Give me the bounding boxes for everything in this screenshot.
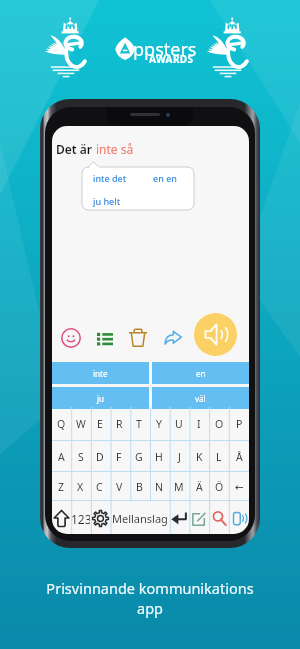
button[interactable]: T bbox=[129, 407, 149, 441]
button[interactable]: N bbox=[149, 472, 169, 501]
staticText: ju helt bbox=[93, 195, 121, 207]
staticText: R bbox=[116, 417, 123, 431]
button[interactable]: ← bbox=[229, 472, 249, 501]
staticText: B bbox=[136, 480, 143, 494]
staticText: C bbox=[96, 480, 103, 494]
button[interactable]: P bbox=[229, 407, 249, 441]
button[interactable]: C bbox=[90, 472, 109, 501]
staticText: inte det bbox=[93, 172, 127, 184]
button[interactable]: Search bbox=[209, 501, 229, 534]
staticText: ju bbox=[97, 393, 105, 404]
staticText: H bbox=[155, 450, 163, 464]
button[interactable]: Q bbox=[52, 407, 71, 441]
button[interactable]: L bbox=[209, 441, 229, 472]
button[interactable]: V bbox=[109, 472, 129, 501]
button[interactable]: O bbox=[209, 407, 229, 441]
button[interactable]: I bbox=[189, 407, 209, 441]
staticText: Z bbox=[58, 480, 65, 494]
staticText: AWARDS bbox=[149, 52, 194, 66]
button[interactable]: Enter bbox=[169, 501, 189, 534]
staticText: Å bbox=[236, 450, 243, 464]
button[interactable]: U bbox=[169, 407, 189, 441]
button[interactable]: Settings bbox=[90, 501, 110, 534]
staticText: W bbox=[76, 417, 86, 431]
button[interactable]: X bbox=[71, 472, 90, 501]
staticText: Ö bbox=[215, 480, 224, 494]
staticText: Mellanslag bbox=[112, 511, 168, 526]
staticText: F bbox=[116, 450, 122, 464]
staticText: en en bbox=[153, 172, 177, 184]
button[interactable]: F bbox=[109, 441, 129, 472]
button[interactable]: Mellanslag bbox=[110, 501, 169, 534]
staticText: P bbox=[236, 417, 243, 431]
staticText: I bbox=[197, 417, 201, 431]
staticText: J bbox=[178, 450, 181, 464]
button[interactable]: Compose bbox=[189, 501, 209, 534]
button[interactable]: J bbox=[169, 441, 189, 472]
staticText: A bbox=[58, 450, 65, 464]
staticText: M bbox=[174, 480, 184, 494]
staticText: X bbox=[77, 480, 84, 494]
button[interactable]: R bbox=[109, 407, 129, 441]
button[interactable]: väl bbox=[152, 387, 249, 409]
staticText: V bbox=[116, 480, 123, 494]
button[interactable]: K bbox=[189, 441, 209, 472]
staticText: Q bbox=[57, 417, 66, 431]
button[interactable]: D bbox=[90, 441, 109, 472]
staticText: K bbox=[196, 450, 203, 464]
button[interactable]: Delete bbox=[129, 328, 147, 347]
button[interactable]: W bbox=[71, 407, 90, 441]
staticText: T bbox=[136, 417, 142, 431]
button[interactable]: 123 bbox=[71, 501, 90, 534]
staticText: E bbox=[97, 417, 103, 431]
button[interactable]: Y bbox=[149, 407, 169, 441]
button[interactable]: M bbox=[169, 472, 189, 501]
staticText: Det är bbox=[56, 141, 96, 157]
staticText: inte så bbox=[96, 141, 134, 157]
button[interactable]: B bbox=[129, 472, 149, 501]
staticText: ppsters bbox=[133, 37, 197, 62]
staticText: 123 bbox=[71, 511, 90, 527]
button[interactable]: Shift bbox=[52, 501, 71, 534]
staticText: S bbox=[78, 450, 84, 464]
button[interactable]: Ä bbox=[189, 472, 209, 501]
button[interactable]: ju bbox=[52, 387, 149, 409]
button[interactable]: A bbox=[52, 441, 71, 472]
button[interactable]: Word list bbox=[97, 331, 113, 344]
button[interactable]: G bbox=[129, 441, 149, 472]
button[interactable]: Voice output bbox=[229, 501, 249, 534]
staticText: U bbox=[175, 417, 183, 431]
staticText: G bbox=[135, 450, 143, 464]
staticText: D bbox=[96, 450, 104, 464]
staticText: en bbox=[196, 368, 206, 379]
button[interactable]: Speak bbox=[194, 313, 237, 356]
staticText: N bbox=[155, 480, 163, 494]
staticText: Ä bbox=[196, 480, 203, 494]
staticText: Prisvinnande kommunikations app bbox=[0, 578, 300, 619]
button[interactable]: en bbox=[152, 362, 249, 384]
button[interactable]: H bbox=[149, 441, 169, 472]
staticText: Y bbox=[156, 417, 162, 431]
button[interactable]: E bbox=[90, 407, 109, 441]
staticText: L bbox=[216, 450, 222, 464]
staticText: inte bbox=[93, 368, 108, 379]
button[interactable]: Z bbox=[52, 472, 71, 501]
button[interactable]: Share bbox=[164, 330, 182, 345]
button[interactable]: inte bbox=[52, 362, 149, 384]
button[interactable]: Ö bbox=[209, 472, 229, 501]
button[interactable]: Å bbox=[229, 441, 249, 472]
button[interactable]: S bbox=[71, 441, 90, 472]
staticText: väl bbox=[195, 393, 206, 404]
staticText: O bbox=[215, 417, 224, 431]
button[interactable]: Emoji bbox=[61, 328, 81, 348]
staticText: ← bbox=[235, 481, 244, 493]
